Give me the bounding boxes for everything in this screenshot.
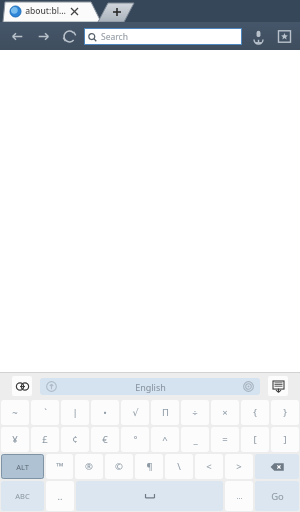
button[interactable]: Bookmarks [271,22,297,50]
button[interactable]: € [91,427,119,452]
staticText: ° [133,433,138,446]
staticText: } [283,406,287,419]
staticText: ™ [56,460,64,473]
button[interactable]: • [91,400,119,425]
button[interactable]: < [195,454,223,479]
staticText: about:bl… [25,5,66,17]
staticText: < [206,460,212,473]
button[interactable]: Search [84,28,242,45]
staticText: _ [193,433,198,446]
button[interactable]: ALT [1,454,44,479]
staticText: Π [162,406,169,419]
button[interactable]: Close tab [69,6,80,17]
staticText: • [103,406,107,419]
staticText: | [72,406,78,419]
staticText: ALT [16,462,29,472]
button[interactable]: Space [76,481,223,511]
button[interactable]: ... [225,481,253,511]
button[interactable]: .. [46,481,74,511]
staticText: ^ [162,433,168,446]
button[interactable]: > [225,454,253,479]
staticText: [ [253,433,257,446]
button[interactable]: © [105,454,133,479]
button[interactable]: } [271,400,299,425]
staticText: Search [101,31,128,43]
staticText: ] [283,433,287,446]
button[interactable]: ÷ [181,400,209,425]
staticText: £ [42,433,48,446]
button[interactable]: Go [255,481,299,511]
button[interactable]: ^ [151,427,179,452]
staticText: ÷ [192,406,198,419]
button[interactable]: Voice search [245,22,271,50]
staticText: ABC [15,491,30,501]
button[interactable]: ® [75,454,103,479]
button[interactable]: ¢ [61,427,89,452]
staticText: \ [177,460,181,473]
staticText: © [115,460,123,473]
button[interactable]: { [241,400,269,425]
staticText: € [102,433,108,446]
button[interactable]: ~ [1,400,29,425]
button[interactable]: about:bl… [3,0,103,22]
button[interactable]: Keyboard settings [12,376,32,396]
button[interactable]: × [211,400,239,425]
staticText: ` [44,406,47,419]
button[interactable]: ¶ [135,454,163,479]
staticText: ¢ [72,433,78,446]
button[interactable]: | [61,400,89,425]
staticText: > [236,460,242,473]
button[interactable]: Hide keyboard [268,376,288,396]
button[interactable]: \ [165,454,193,479]
staticText: √ [132,407,139,418]
button[interactable]: ° [121,427,149,452]
staticText: × [222,406,228,419]
button[interactable]: ] [271,427,299,452]
button[interactable]: √ [121,400,149,425]
button[interactable]: _ [181,427,209,452]
staticText: = [222,433,228,446]
button[interactable]: ` [31,400,59,425]
staticText: ~ [12,406,18,419]
staticText: ® [85,460,93,473]
button[interactable]: Π [151,400,179,425]
button[interactable]: ™ [46,454,73,479]
staticText: ... [236,491,243,501]
staticText: { [253,406,257,419]
button[interactable]: English [40,378,260,395]
button[interactable]: ABC [1,481,44,511]
button[interactable]: ¥ [1,427,29,452]
button[interactable]: [ [241,427,269,452]
button[interactable]: Backspace [255,454,299,479]
button[interactable]: £ [31,427,59,452]
staticText: Go [271,490,284,503]
staticText: .. [57,490,63,503]
button[interactable]: Back [4,22,30,50]
staticText: English [135,381,166,393]
staticText: ¶ [146,460,153,473]
staticText: ¥ [12,433,18,446]
button[interactable]: Forward [30,22,56,50]
button[interactable]: Reload [56,22,82,50]
button[interactable]: = [211,427,239,452]
button[interactable]: New tab [98,0,138,22]
